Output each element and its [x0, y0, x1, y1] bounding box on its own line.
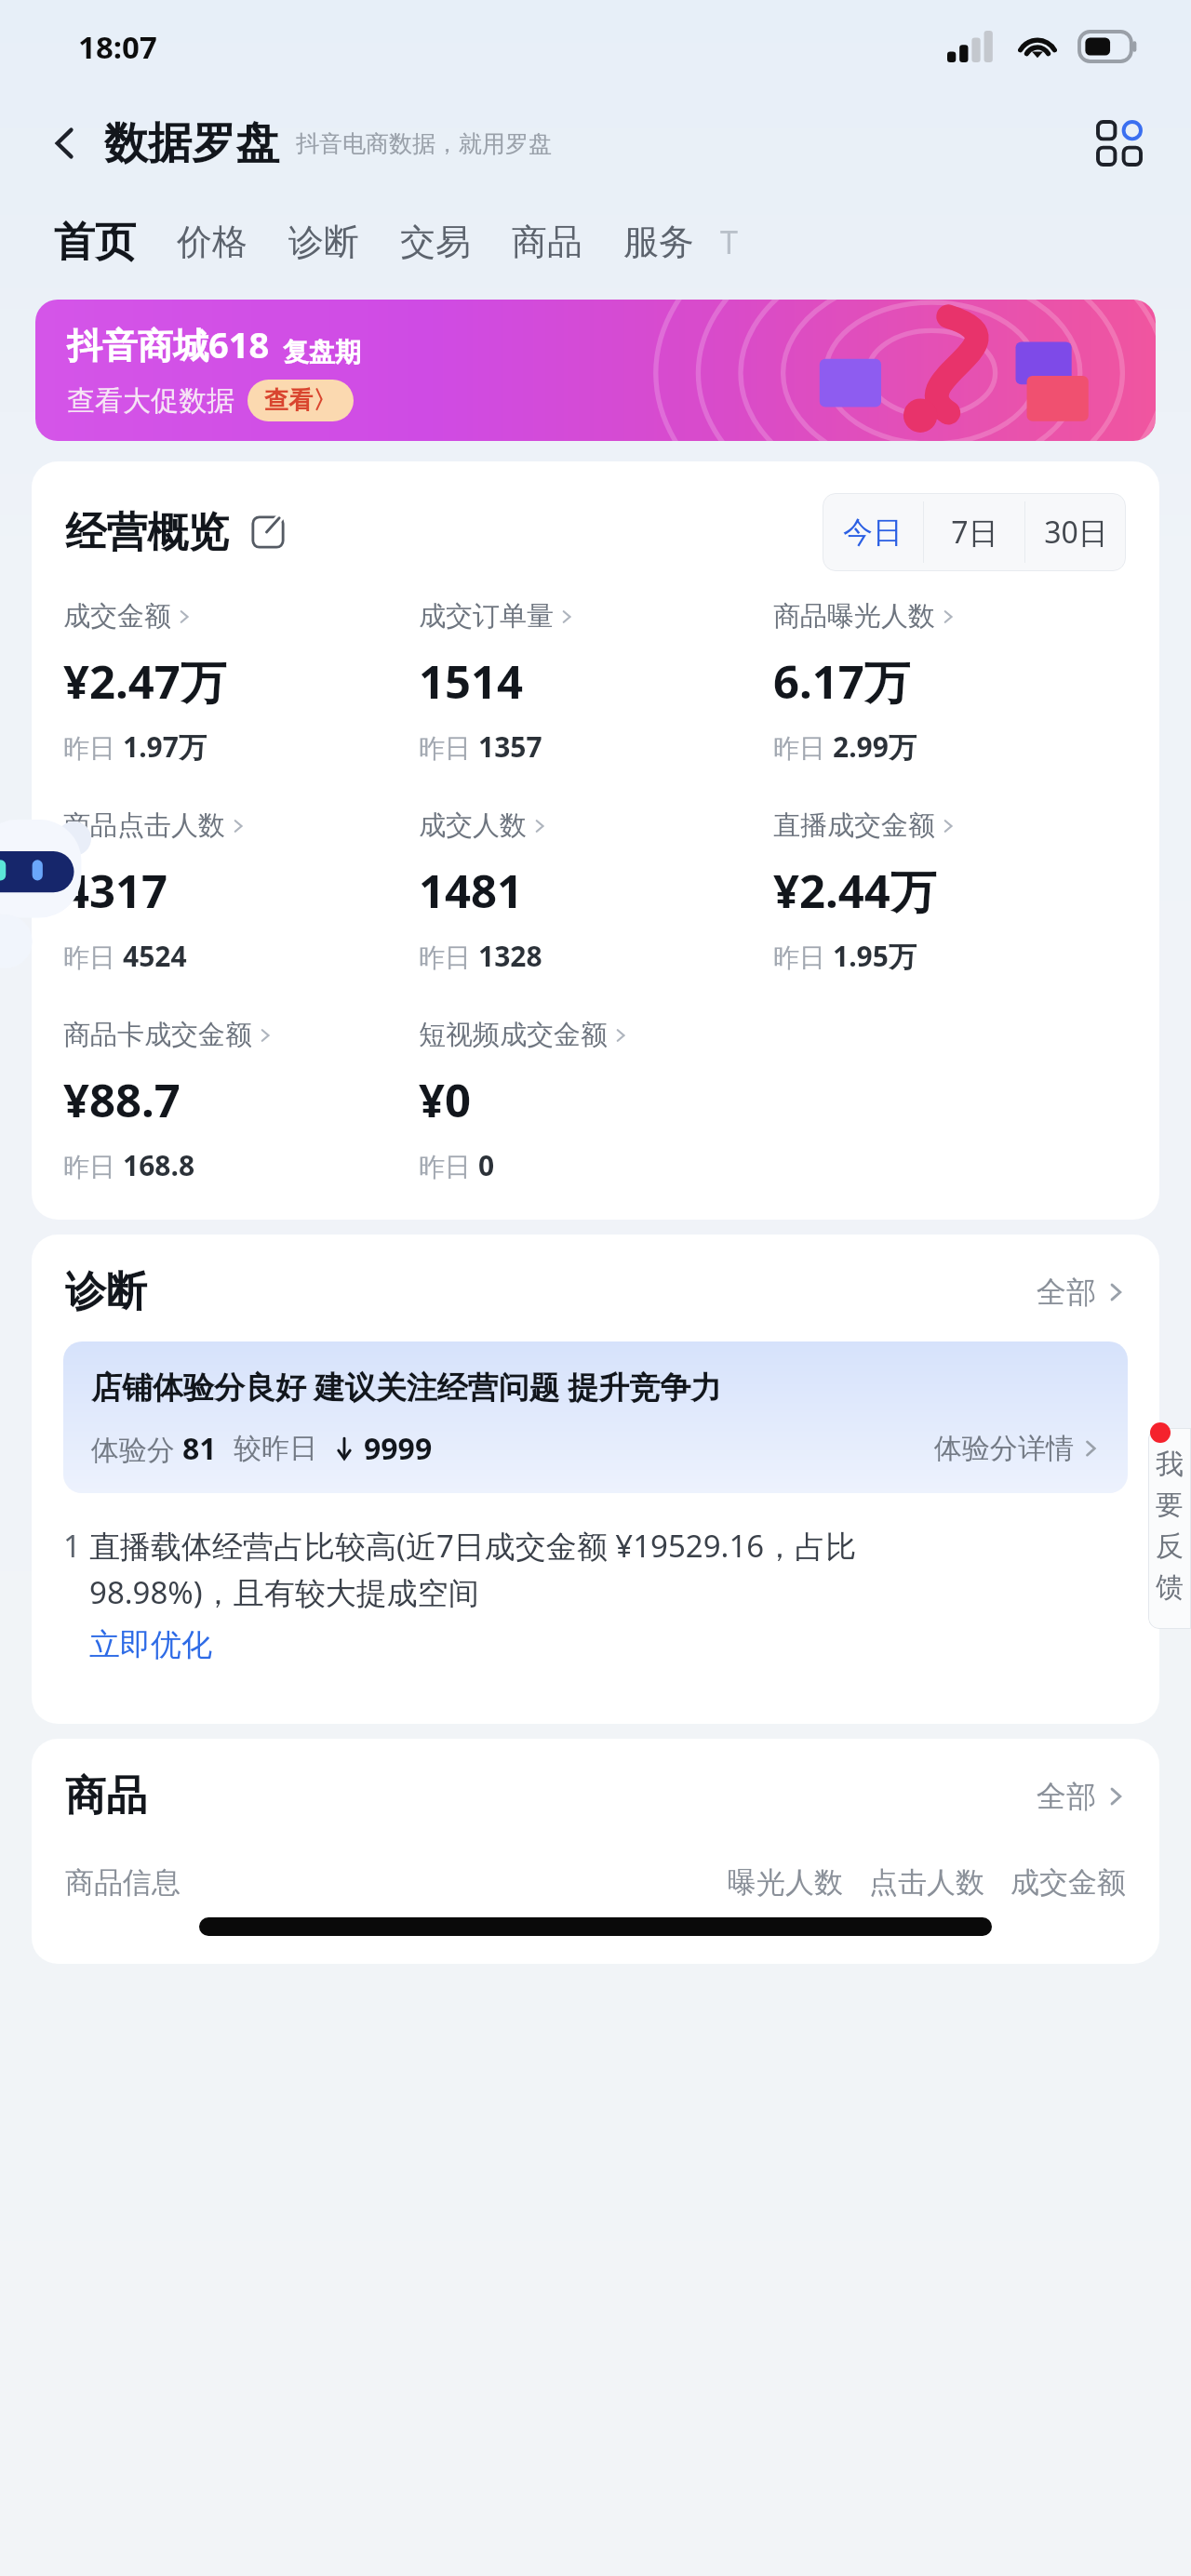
button[interactable]: 全部: [1037, 1778, 1126, 1815]
staticText: 商品曝光人数: [773, 599, 935, 634]
button[interactable]: 价格: [177, 220, 248, 264]
staticText: 昨日: [773, 729, 833, 765]
staticText: 复盘期: [283, 336, 361, 368]
staticText: 服务: [623, 220, 694, 264]
button[interactable]: 我: [1148, 1428, 1191, 1629]
staticText: 1: [63, 1525, 89, 1567]
button[interactable]: 抖音商城618: [35, 300, 1156, 441]
staticText: 经营概览: [65, 507, 229, 558]
staticText: 体验分: [91, 1430, 182, 1468]
staticText: ¥0: [419, 1069, 472, 1131]
staticText: 1.97万: [123, 727, 207, 766]
staticText: 1481: [419, 860, 524, 922]
button[interactable]: 服务: [623, 220, 694, 264]
staticText: 昨日: [63, 729, 123, 765]
staticText: 我: [1156, 1447, 1184, 1482]
staticText: 较昨日: [234, 1431, 317, 1466]
staticText: 商品: [65, 1770, 147, 1822]
staticText: 交易: [400, 220, 471, 264]
staticText: 昨日: [419, 1148, 478, 1183]
staticText: 昨日: [63, 939, 123, 974]
button[interactable]: 全部: [1037, 1274, 1126, 1311]
staticText: 昨日: [419, 729, 478, 765]
button[interactable]: Apps: [1087, 111, 1152, 176]
staticText: 1328: [478, 937, 542, 975]
staticText: 商品信息: [65, 1864, 181, 1901]
staticText: 成交金额: [1010, 1864, 1126, 1901]
staticText: 商品: [512, 220, 582, 264]
staticText: 30日: [1044, 512, 1108, 553]
staticText: 体验分详情: [934, 1431, 1074, 1466]
button[interactable]: Back: [39, 117, 91, 169]
staticText: T: [720, 220, 738, 263]
button[interactable]: 直播成交金额: [773, 808, 1128, 975]
button[interactable]: 体验分详情: [934, 1431, 1100, 1466]
staticText: 诊断: [288, 220, 359, 264]
button[interactable]: 商品点击人数: [63, 808, 419, 975]
button[interactable]: 今日: [823, 493, 923, 571]
staticText: ¥2.47万: [63, 650, 226, 713]
button[interactable]: 成交金额: [63, 599, 419, 766]
staticText: 短视频成交金额: [419, 1018, 608, 1052]
staticText: 168.8: [123, 1146, 195, 1184]
staticText: 抖音电商数据，就用罗盘: [296, 129, 552, 158]
staticText: 18:07: [78, 26, 157, 68]
button[interactable]: 成交人数: [419, 808, 773, 975]
staticText: 今日: [843, 514, 903, 551]
staticText: 店铺体验分良好 建议关注经营问题 提升竞争力: [91, 1366, 722, 1408]
button[interactable]: 商品曝光人数: [773, 599, 1128, 766]
button[interactable]: 交易: [400, 220, 471, 264]
button[interactable]: 立即优化: [89, 1625, 212, 1664]
staticText: 昨日: [773, 939, 833, 974]
staticText: ¥88.7: [63, 1069, 181, 1131]
staticText: 0: [478, 1146, 495, 1184]
staticText: 7日: [951, 512, 998, 553]
staticText: 商品卡成交金额: [63, 1018, 252, 1052]
staticText: 全部: [1037, 1778, 1096, 1815]
staticText: 诊断: [65, 1266, 147, 1317]
staticText: 馈: [1156, 1569, 1184, 1605]
staticText: 曝光人数: [728, 1864, 843, 1901]
button[interactable]: 商品: [512, 220, 582, 264]
staticText: 9999: [364, 1428, 433, 1469]
button[interactable]: 成交订单量: [419, 599, 773, 766]
button[interactable]: 短视频成交金额: [419, 1018, 773, 1184]
staticText: 查看〉: [264, 385, 337, 416]
staticText: 1357: [478, 727, 542, 766]
button[interactable]: 首页: [54, 217, 136, 268]
staticText: 1514: [419, 650, 524, 713]
staticText: 点击人数: [869, 1864, 984, 1901]
staticText: 昨日: [63, 1148, 123, 1183]
staticText: 查看大促数据: [67, 383, 234, 419]
staticText: 首页: [54, 217, 136, 268]
staticText: 6.17万: [773, 650, 910, 713]
staticText: 成交订单量: [419, 599, 554, 634]
staticText: 反: [1156, 1528, 1184, 1564]
button[interactable]: 查看〉: [264, 385, 337, 416]
staticText: 数据罗盘: [104, 116, 279, 171]
staticText: 4317: [63, 860, 168, 922]
staticText: ¥2.44万: [773, 860, 936, 922]
staticText: 1.95万: [833, 937, 917, 975]
staticText: 要: [1156, 1488, 1184, 1523]
button[interactable]: 7日: [924, 493, 1024, 571]
staticText: 81: [182, 1428, 217, 1469]
staticText: 价格: [177, 220, 248, 264]
staticText: 直播成交金额: [773, 808, 935, 843]
staticText: 成交金额: [63, 599, 171, 634]
staticText: 直播载体经营占比较高(近7日成交金额 ¥19529.16，占比 98.98%)，…: [89, 1525, 857, 1612]
button[interactable]: 商品卡成交金额: [63, 1018, 419, 1184]
staticText: 全部: [1037, 1274, 1096, 1311]
button[interactable]: Edit: [246, 510, 290, 554]
button[interactable]: 诊断: [288, 220, 359, 264]
staticText: 商品点击人数: [63, 808, 225, 843]
button[interactable]: 店铺体验分良好 建议关注经营问题 提升竞争力: [63, 1341, 1128, 1493]
staticText: 昨日: [419, 939, 478, 974]
button[interactable]: 30日: [1025, 493, 1126, 571]
staticText: 立即优化: [89, 1625, 212, 1664]
staticText: 抖音商城618: [67, 320, 270, 368]
staticText: 2.99万: [833, 727, 917, 766]
staticText: 成交人数: [419, 808, 527, 843]
staticText: 4524: [123, 937, 187, 975]
